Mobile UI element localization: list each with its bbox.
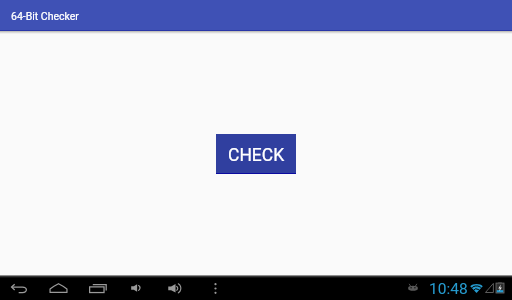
staticText: CHECK (228, 145, 285, 166)
button[interactable]: More options (208, 279, 223, 298)
button[interactable]: Recent apps (85, 281, 111, 296)
button[interactable]: Back (7, 281, 31, 296)
staticText: 10:48 (429, 280, 468, 298)
button[interactable]: Home (45, 280, 72, 296)
button[interactable]: Volume up (164, 280, 185, 297)
button[interactable]: CHECK (216, 134, 296, 174)
button[interactable]: Volume down (127, 281, 144, 295)
staticText: 64-Bit Checker (11, 10, 79, 22)
